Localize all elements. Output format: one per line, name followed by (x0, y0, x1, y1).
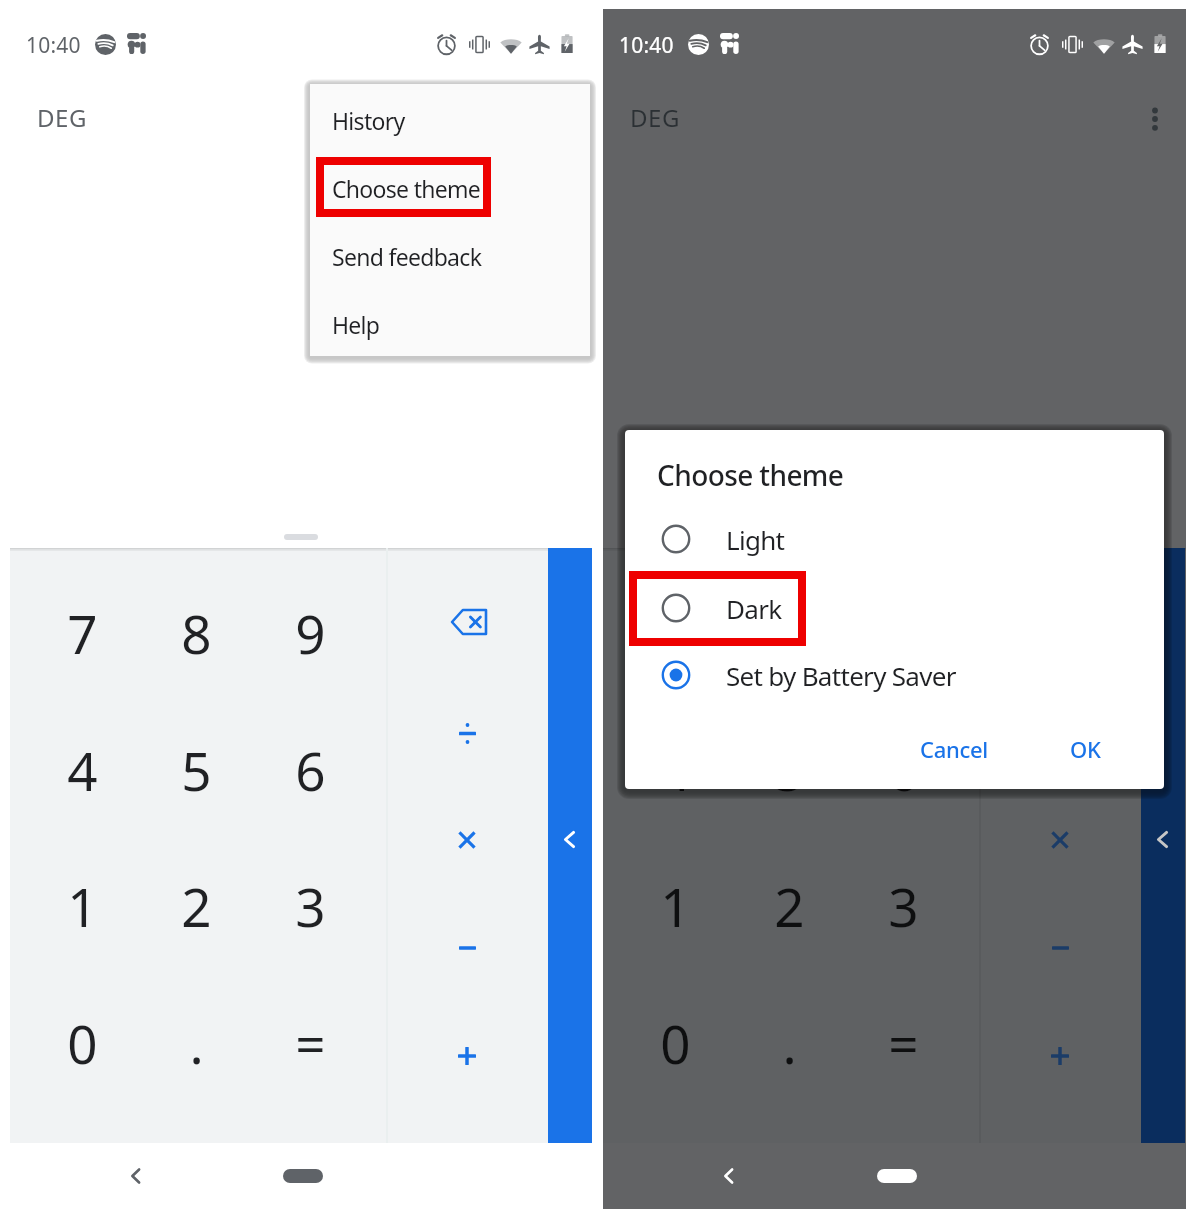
staticText: . (189, 1007, 204, 1079)
staticText: DEG (630, 101, 681, 134)
button[interactable]: 9 (248, 571, 372, 695)
button[interactable]: Cancel (899, 724, 1009, 774)
staticText: 7 (660, 597, 691, 669)
button[interactable]: Light (625, 505, 1164, 573)
staticText: 8 (774, 597, 805, 669)
button[interactable]: 3 (248, 844, 372, 968)
button[interactable]: 5 (134, 708, 258, 832)
staticText: Choose theme (332, 173, 481, 204)
staticText: Dark (726, 591, 782, 626)
staticText: 4 (660, 734, 691, 806)
staticText: 6 (295, 734, 326, 806)
staticText: 8 (181, 597, 212, 669)
button[interactable]: Send feedback (310, 222, 590, 290)
staticText: 4 (67, 734, 98, 806)
staticText: 9 (888, 597, 919, 669)
staticText: DEG (37, 101, 88, 134)
button[interactable]: Home (283, 1169, 323, 1183)
staticText: 10:40 (619, 31, 674, 60)
button[interactable]: History (310, 86, 590, 154)
button[interactable]: Dark (625, 574, 1164, 642)
other: Plus (1005, 1001, 1115, 1111)
staticText: . (782, 1007, 797, 1079)
button[interactable]: Minus (412, 893, 522, 1003)
button[interactable]: = (248, 981, 372, 1105)
button[interactable]: Plus (412, 1001, 522, 1111)
staticText: 6 (888, 734, 919, 806)
staticText: Set by Battery Saver (726, 658, 956, 693)
button[interactable]: Back (123, 1163, 149, 1189)
button[interactable]: DEG (26, 93, 96, 143)
staticText: Cancel (920, 734, 988, 764)
staticText: = (295, 1007, 326, 1079)
button[interactable]: 7 (20, 571, 144, 695)
staticText: 1 (660, 870, 691, 942)
staticText: Send feedback (332, 241, 482, 272)
staticText: 1 (67, 870, 98, 942)
button[interactable]: More options (1131, 95, 1179, 143)
button[interactable]: 2 (134, 844, 258, 968)
staticText: 5 (181, 734, 212, 806)
staticText: OK (1070, 734, 1101, 764)
staticText: 2 (774, 870, 805, 942)
other: Multiply (1005, 785, 1115, 895)
button[interactable]: Choose theme (310, 154, 590, 222)
button[interactable]: Show advanced pad (548, 548, 592, 1143)
button[interactable]: Multiply (412, 785, 522, 895)
button[interactable]: 1 (20, 844, 144, 968)
button[interactable]: . (134, 981, 258, 1105)
other: Divide (1005, 678, 1115, 788)
staticText: Choose theme (657, 456, 844, 494)
button[interactable]: 8 (134, 571, 258, 695)
staticText: = (888, 1007, 919, 1079)
staticText: 0 (660, 1007, 691, 1079)
button[interactable]: Set by Battery Saver (625, 641, 1164, 709)
staticText: 5 (774, 734, 805, 806)
button[interactable]: Divide (412, 678, 522, 788)
button[interactable]: Backspace (412, 567, 522, 677)
staticText: 10:40 (26, 31, 81, 60)
staticText: 3 (295, 870, 326, 942)
button[interactable]: 0 (20, 981, 144, 1105)
staticText: 3 (888, 870, 919, 942)
staticText: Help (332, 309, 380, 340)
button[interactable]: 4 (20, 708, 144, 832)
staticText: History (332, 105, 405, 136)
button[interactable]: Back (716, 1163, 742, 1189)
staticText: 2 (181, 870, 212, 942)
other: Show advanced pad (1141, 548, 1185, 1143)
staticText: 9 (295, 597, 326, 669)
button[interactable]: 6 (248, 708, 372, 832)
button[interactable]: Home (877, 1169, 917, 1183)
other: Minus (1005, 893, 1115, 1003)
staticText: Light (726, 522, 785, 557)
button[interactable]: OK (1040, 724, 1130, 774)
staticText: 7 (67, 597, 98, 669)
staticText: 0 (67, 1007, 98, 1079)
button[interactable]: Help (310, 290, 590, 358)
